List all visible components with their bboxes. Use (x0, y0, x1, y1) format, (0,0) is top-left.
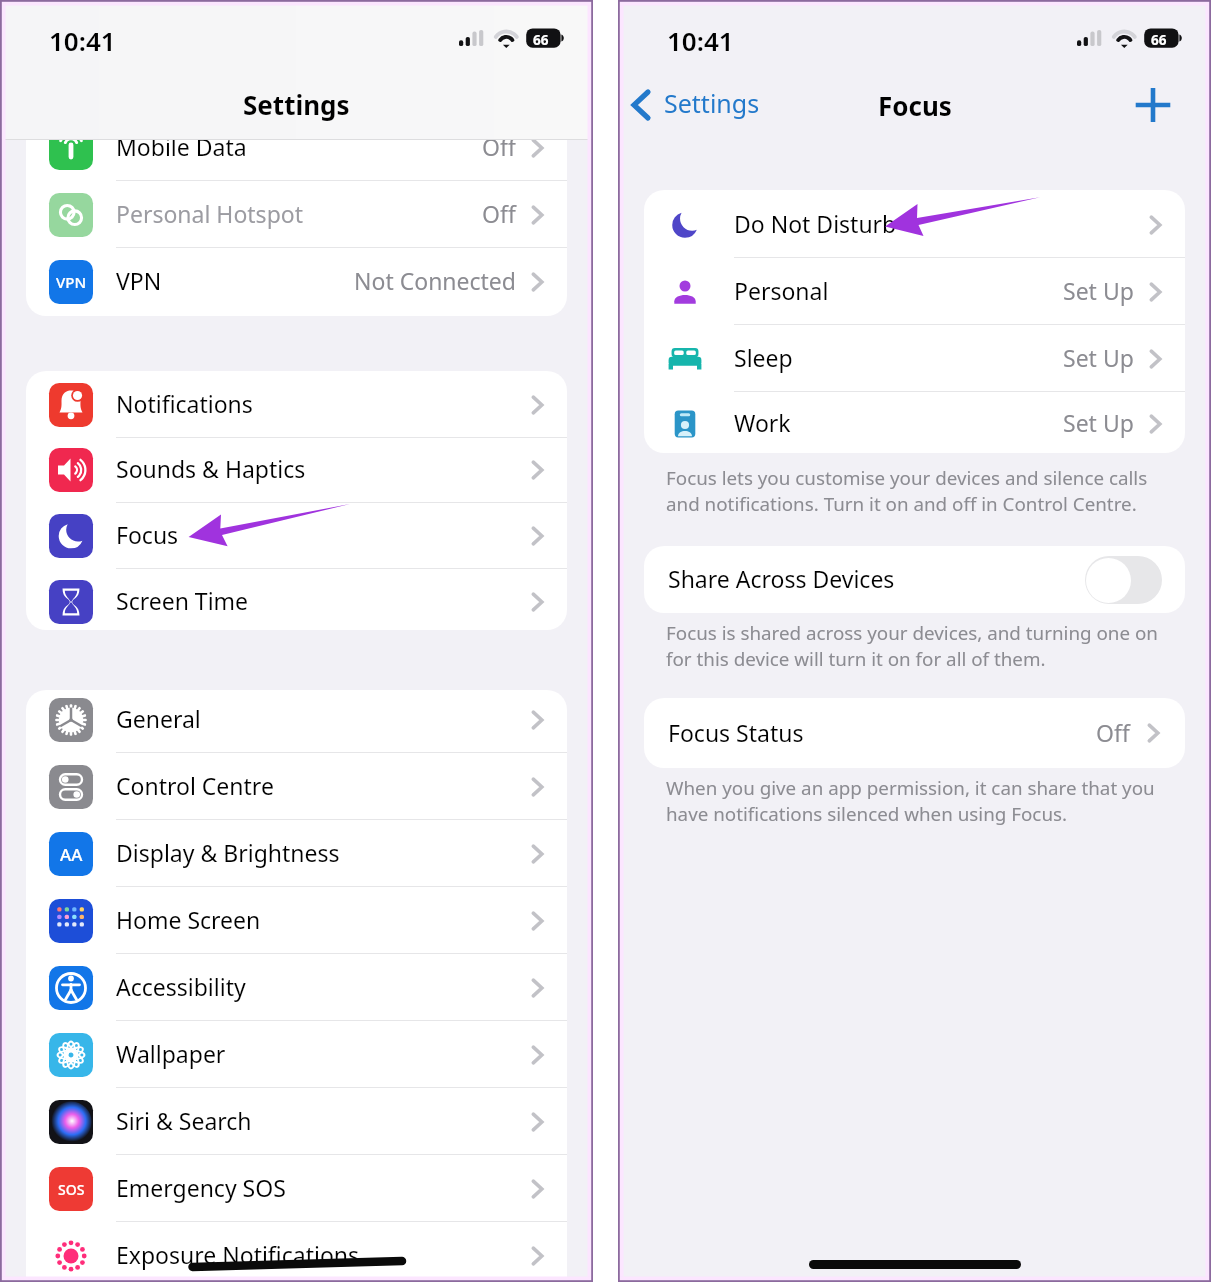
button[interactable]: Sounds & Haptics (26, 436, 567, 503)
staticText: Settings (664, 86, 760, 120)
staticText: Not Connected (354, 265, 516, 296)
button[interactable]: Notifications (26, 371, 567, 438)
staticText: Set Up (1063, 407, 1134, 438)
button[interactable]: Wallpaper (26, 1021, 567, 1088)
staticText: When you give an app permission, it can … (666, 775, 1155, 801)
staticText: Wallpaper (116, 1038, 226, 1069)
button[interactable]: Accessibility (26, 954, 567, 1021)
button[interactable]: Exposure Notifications (26, 1222, 567, 1282)
staticText: Share Across Devices (668, 563, 895, 594)
staticText: and notifications. Turn it on and off in… (666, 491, 1137, 517)
button[interactable]: Screen Time (26, 568, 567, 635)
staticText: VPN (116, 265, 162, 296)
staticText: SOS (58, 1180, 85, 1199)
staticText: Emergency SOS (116, 1172, 286, 1203)
staticText: AA (60, 843, 83, 866)
staticText: Display & Brightness (116, 837, 340, 868)
staticText: Sleep (734, 342, 793, 373)
button[interactable]: Focus (26, 502, 567, 569)
button[interactable]: Home Screen (26, 887, 567, 954)
staticText: Personal Hotspot (116, 198, 303, 229)
staticText: Notifications (116, 388, 253, 419)
staticText: Siri & Search (116, 1105, 252, 1136)
staticText: Set Up (1063, 342, 1134, 373)
staticText: Sounds & Haptics (116, 453, 306, 484)
staticText: Focus (116, 519, 179, 550)
staticText: Screen Time (116, 585, 249, 616)
staticText: Focus lets you customise your devices an… (666, 465, 1148, 491)
button[interactable]: Work (644, 390, 1185, 457)
staticText: Personal (734, 275, 829, 306)
staticText: Focus (878, 88, 952, 123)
button[interactable]: Sleep (644, 325, 1185, 392)
button[interactable]: Siri & Search (26, 1088, 567, 1155)
staticText: Do Not Disturb (734, 208, 897, 239)
staticText: Home Screen (116, 904, 261, 935)
button[interactable]: General (26, 686, 567, 753)
button[interactable]: Back to Settings (631, 85, 760, 125)
staticText: Settings (243, 87, 350, 122)
staticText: Focus Status (668, 717, 804, 748)
staticText: for this device will turn it on for all … (666, 646, 1046, 672)
button[interactable]: Add Focus (1133, 85, 1173, 125)
button[interactable]: Personal (644, 258, 1185, 325)
button[interactable]: Share Across Devices toggle, off (1085, 556, 1162, 604)
button[interactable]: Mobile Data (26, 114, 567, 181)
staticText: Off (482, 198, 516, 229)
staticText: Accessibility (116, 971, 246, 1002)
staticText: Off (482, 131, 516, 162)
staticText: 66 (533, 31, 549, 49)
staticText: Mobile Data (116, 131, 247, 162)
staticText: have notifications silenced when using F… (666, 801, 1068, 827)
staticText: Focus is shared across your devices, and… (666, 620, 1158, 646)
staticText: 66 (1151, 31, 1167, 49)
staticText: Exposure Notifications (116, 1239, 360, 1270)
button[interactable]: Control Centre (26, 753, 567, 820)
staticText: VPN (56, 272, 87, 292)
button[interactable]: Focus Status (644, 698, 1185, 768)
button[interactable]: Do Not Disturb (644, 191, 1185, 258)
staticText: Off (1096, 717, 1130, 748)
staticText: Work (734, 407, 791, 438)
button[interactable]: VPN (26, 248, 567, 315)
staticText: 10:41 (667, 23, 734, 58)
staticText: Set Up (1063, 275, 1134, 306)
button[interactable]: Personal Hotspot (26, 181, 567, 248)
button[interactable]: SOS (26, 1155, 567, 1222)
staticText: Control Centre (116, 770, 274, 801)
staticText: 10:41 (49, 23, 116, 58)
button[interactable]: AA (26, 820, 567, 887)
staticText: General (116, 703, 201, 734)
button[interactable]: Share Across Devices (644, 546, 1185, 613)
